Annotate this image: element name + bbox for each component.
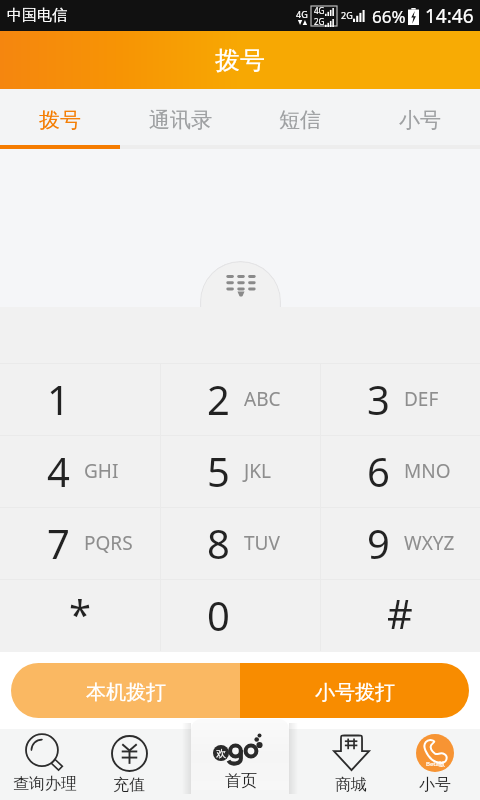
- staticText: 2: [207, 372, 230, 426]
- staticText: GHI: [84, 458, 119, 484]
- staticText: 充值: [113, 775, 145, 795]
- button[interactable]: 5: [160, 435, 320, 507]
- button[interactable]: 商城: [312, 729, 390, 800]
- button[interactable]: 3: [320, 363, 480, 435]
- button[interactable]: 7: [0, 507, 160, 579]
- staticText: 4G: [296, 8, 308, 20]
- button[interactable]: 通讯录: [120, 89, 240, 149]
- staticText: JKL: [244, 458, 271, 484]
- staticText: 7: [47, 516, 70, 570]
- staticText: 0: [207, 588, 230, 642]
- staticText: *: [69, 586, 92, 640]
- button[interactable]: 充值: [90, 729, 168, 800]
- staticText: 中国电信: [7, 6, 67, 25]
- staticText: #: [387, 586, 413, 640]
- staticText: 3: [367, 372, 390, 426]
- staticText: 通讯录: [149, 107, 212, 133]
- button[interactable]: Show keypad: [200, 261, 281, 307]
- staticText: ABC: [244, 386, 281, 412]
- staticText: 14:46: [425, 3, 474, 29]
- button[interactable]: 8: [160, 507, 320, 579]
- staticText: 本机拨打: [86, 680, 166, 705]
- staticText: 9: [367, 516, 390, 570]
- button[interactable]: 小号拨打: [240, 663, 469, 718]
- staticText: 4G: [314, 5, 325, 16]
- staticText: 2G: [314, 16, 325, 27]
- staticText: 首页: [225, 771, 257, 790]
- staticText: 1: [47, 372, 70, 426]
- button[interactable]: 4: [0, 435, 160, 507]
- staticText: 短信: [279, 107, 321, 133]
- staticText: TUV: [244, 530, 280, 556]
- staticText: DEF: [404, 386, 439, 412]
- staticText: PQRS: [84, 530, 133, 556]
- button[interactable]: 欢: [191, 719, 289, 790]
- staticText: 4: [47, 444, 70, 498]
- button[interactable]: 9: [320, 507, 480, 579]
- button[interactable]: *: [0, 579, 160, 651]
- button[interactable]: Beta版: [390, 729, 480, 800]
- button[interactable]: 1: [0, 363, 160, 435]
- staticText: 66%: [372, 5, 406, 28]
- staticText: Beta版: [426, 760, 445, 768]
- button[interactable]: 6: [320, 435, 480, 507]
- button[interactable]: 0: [160, 579, 320, 651]
- staticText: MNO: [404, 458, 451, 484]
- staticText: 拨号: [215, 45, 265, 76]
- staticText: 查询办理: [13, 774, 77, 794]
- button[interactable]: 2: [160, 363, 320, 435]
- staticText: 8: [207, 516, 230, 570]
- button[interactable]: 小号: [360, 89, 480, 149]
- staticText: WXYZ: [404, 530, 455, 556]
- staticText: 小号: [399, 107, 441, 133]
- button[interactable]: #: [320, 579, 480, 651]
- staticText: 小号: [419, 775, 451, 795]
- staticText: 商城: [335, 775, 367, 795]
- button[interactable]: 查询办理: [0, 729, 90, 800]
- button[interactable]: 短信: [240, 89, 360, 149]
- staticText: 6: [367, 444, 390, 498]
- staticText: 欢: [216, 747, 226, 760]
- button[interactable]: 拨号: [0, 89, 120, 149]
- staticText: 拨号: [39, 107, 81, 133]
- staticText: 2G: [341, 9, 353, 21]
- staticText: 5: [207, 444, 230, 498]
- staticText: 小号拨打: [315, 680, 395, 705]
- button[interactable]: 本机拨打: [11, 663, 240, 718]
